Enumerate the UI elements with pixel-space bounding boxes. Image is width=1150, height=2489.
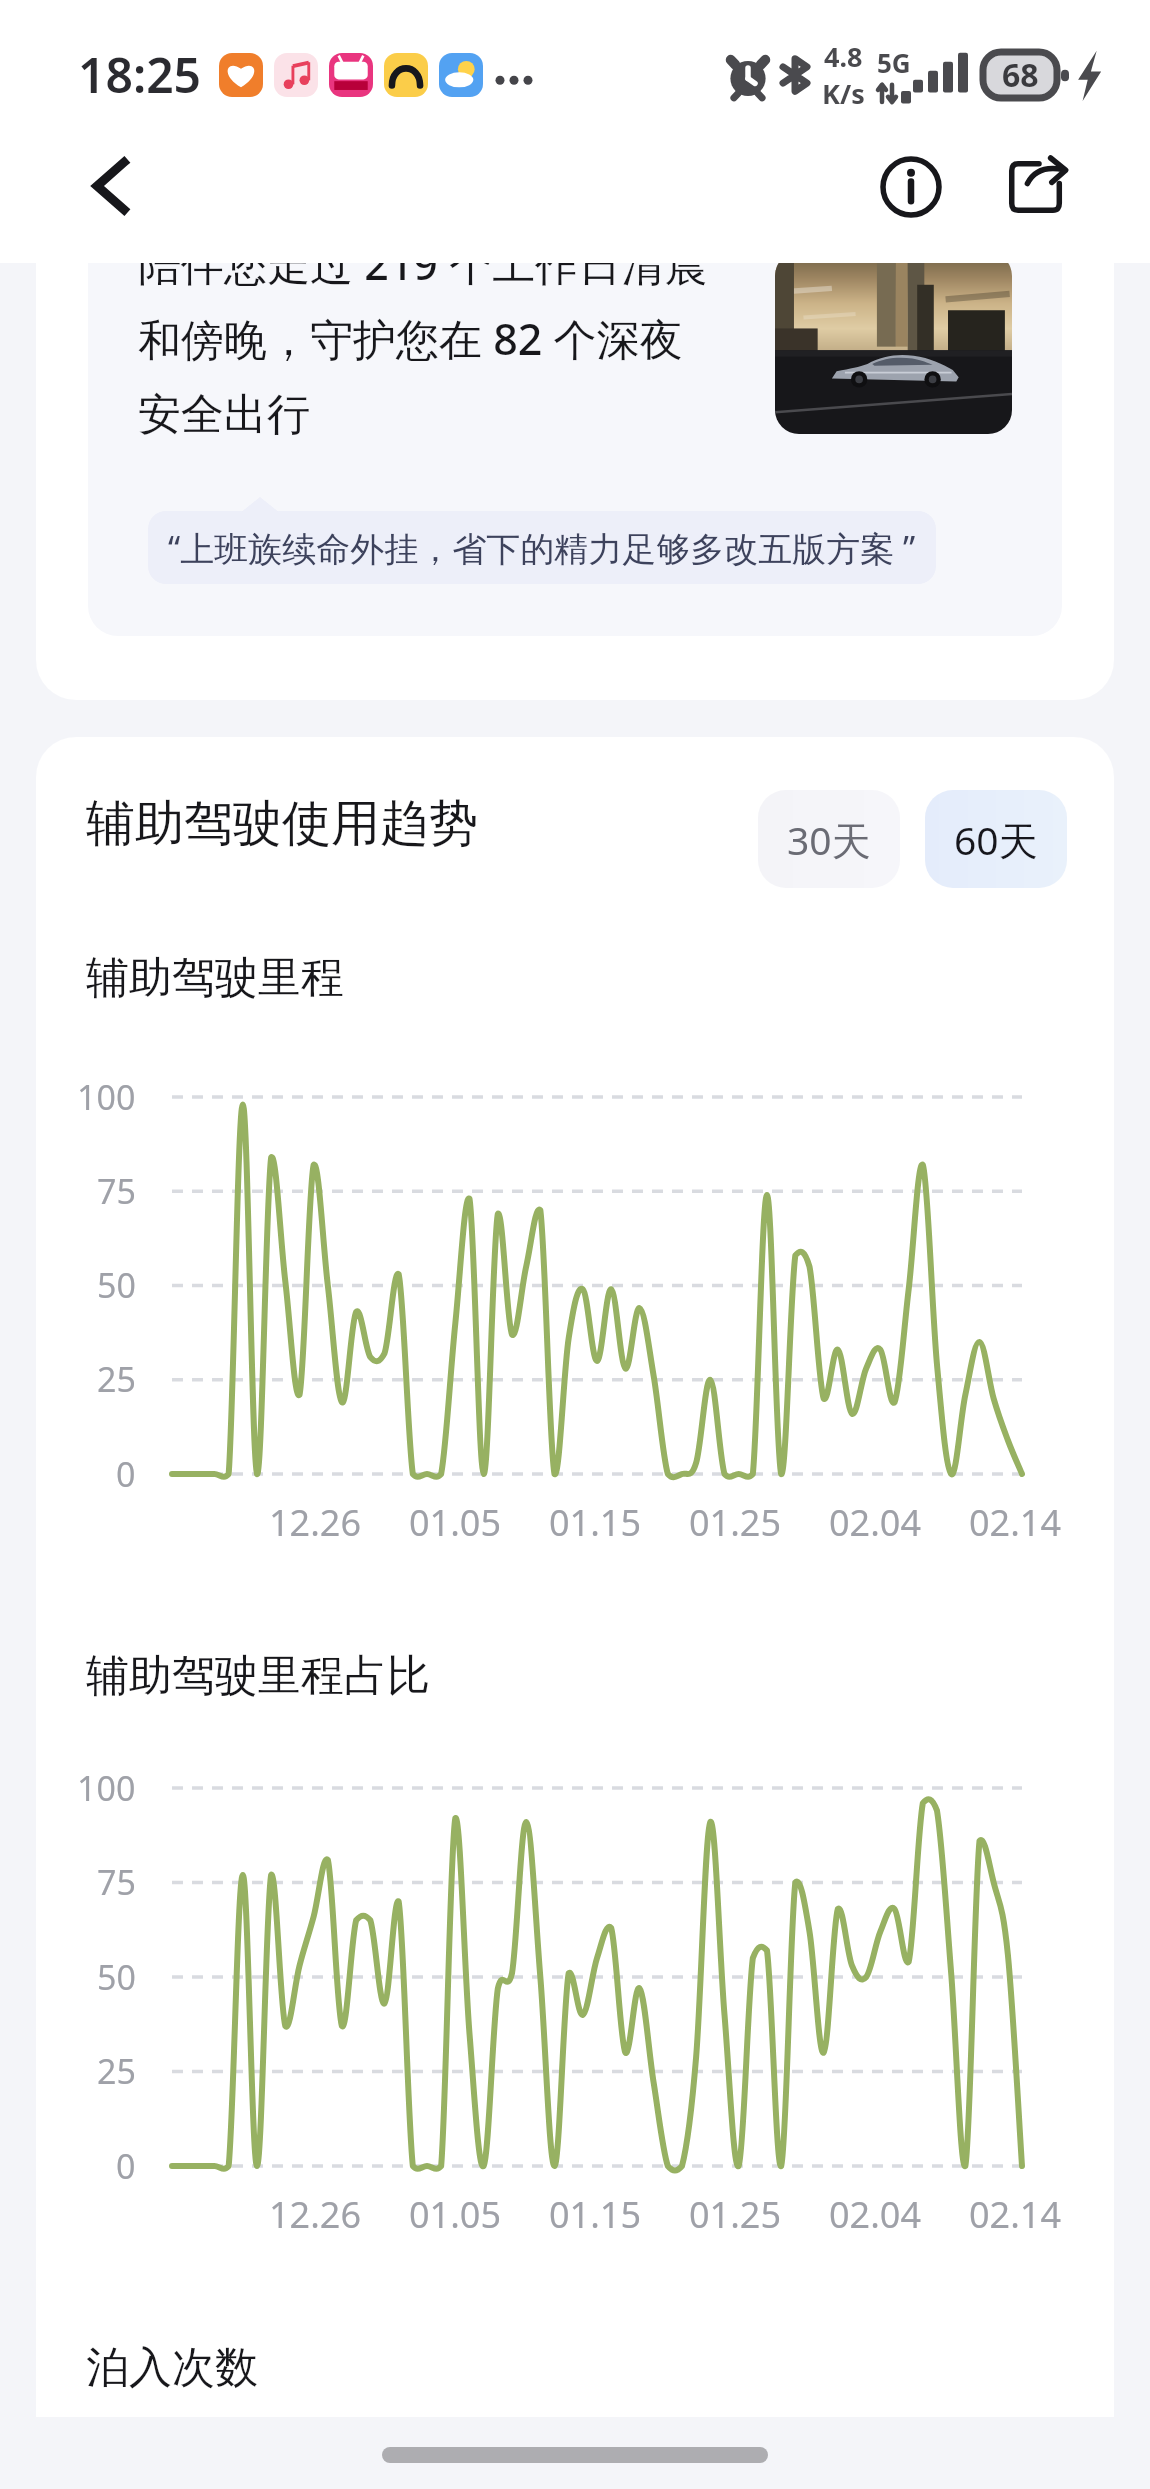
- staticText: 5G: [877, 45, 911, 80]
- staticText: 01.25: [645, 1498, 825, 1547]
- staticText: 50: [97, 1954, 136, 2000]
- button[interactable]: Info: [866, 142, 956, 232]
- staticText: 0: [116, 2143, 136, 2189]
- staticText: K/s: [822, 75, 865, 112]
- staticText: 02.04: [785, 2190, 965, 2239]
- staticText: 02.14: [925, 2190, 1105, 2239]
- staticText: 18:25: [78, 42, 202, 107]
- staticText: 30天: [787, 813, 871, 866]
- staticText: 01.05: [365, 2190, 545, 2239]
- staticText: 0: [116, 1451, 136, 1497]
- staticText: 泊入次数: [86, 2341, 258, 2395]
- staticText: 68: [1002, 53, 1039, 97]
- staticText: 02.04: [785, 1498, 965, 1547]
- staticText: 25: [97, 1356, 136, 1402]
- staticText: 陪伴您走过 219 个工作日清晨和傍晚，守护您在 82 个深夜安全出行: [138, 263, 718, 441]
- staticText: 75: [97, 1168, 136, 1214]
- staticText: 75: [97, 1859, 136, 1905]
- staticText: 01.25: [645, 2190, 825, 2239]
- staticText: 02.14: [925, 1498, 1105, 1547]
- staticText: 4.8: [824, 38, 863, 75]
- staticText: 60天: [954, 813, 1038, 866]
- button[interactable]: 陪伴您走过 219 个工作日清晨和傍晚，守护您在 82 个深夜安全出行: [36, 263, 1114, 700]
- staticText: 辅助驾驶使用趋势: [86, 793, 478, 855]
- staticText: 50: [97, 1262, 136, 1308]
- staticText: 辅助驾驶里程: [86, 951, 344, 1005]
- staticText: 01.15: [505, 1498, 685, 1547]
- staticText: 100: [77, 1765, 136, 1811]
- staticText: 01.05: [365, 1498, 545, 1547]
- staticText: 100: [77, 1074, 136, 1120]
- staticText: 01.15: [505, 2190, 685, 2239]
- staticText: 12.26: [225, 2190, 405, 2239]
- staticText: 25: [97, 2048, 136, 2094]
- staticText: 12.26: [225, 1498, 405, 1547]
- button[interactable]: Share: [994, 142, 1084, 232]
- staticText: 辅助驾驶里程占比: [86, 1649, 430, 1703]
- button[interactable]: 30天: [758, 790, 900, 888]
- staticText: “上班族续命外挂，省下的精力足够多改五版方案 ”: [168, 525, 916, 571]
- button[interactable]: 60天: [925, 790, 1067, 888]
- button[interactable]: Back: [66, 142, 154, 230]
